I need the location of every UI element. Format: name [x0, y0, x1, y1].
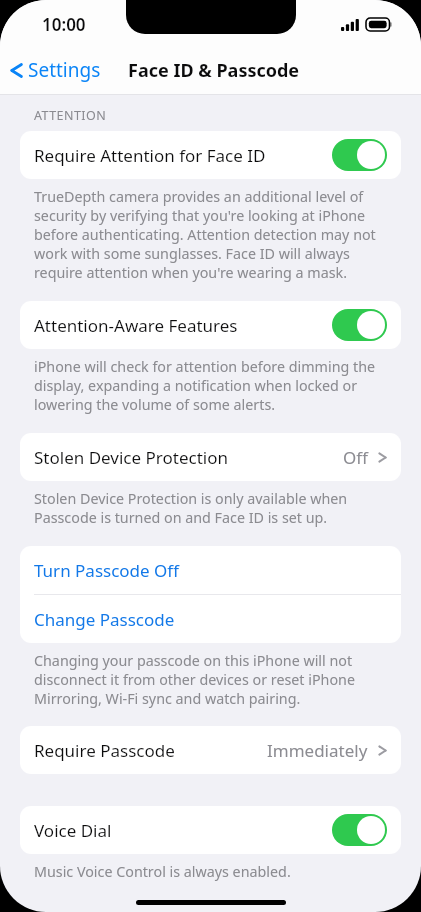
staticText: Stolen Device Protection is only availab…: [34, 489, 393, 527]
button[interactable]: Stolen Device Protection: [20, 433, 401, 481]
staticText: Change Passcode: [34, 608, 175, 631]
button[interactable]: Toggle, on: [332, 139, 387, 171]
button[interactable]: Voice Dial: [20, 806, 401, 854]
staticText: iPhone will check for attention before d…: [34, 357, 393, 414]
button[interactable]: Change Passcode: [20, 595, 401, 643]
button[interactable]: Toggle, on: [332, 309, 387, 341]
staticText: Music Voice Control is always enabled.: [34, 862, 291, 881]
staticText: Off: [343, 446, 368, 469]
staticText: Immediately: [267, 739, 368, 762]
staticText: Require Passcode: [34, 739, 267, 762]
staticText: Voice Dial: [34, 819, 332, 842]
button[interactable]: Require Passcode: [20, 726, 401, 774]
button[interactable]: Toggle, on: [332, 814, 387, 846]
staticText: ATTENTION: [34, 107, 107, 124]
staticText: Changing your passcode on this iPhone wi…: [34, 651, 393, 708]
button[interactable]: Back to Settings: [0, 51, 109, 89]
staticText: TrueDepth camera provides an additional …: [34, 187, 393, 282]
staticText: 10:00: [42, 13, 86, 36]
staticText: Stolen Device Protection: [34, 446, 343, 469]
staticText: Require Attention for Face ID: [34, 144, 332, 167]
staticText: Settings: [28, 57, 101, 83]
staticText: Turn Passcode Off: [34, 559, 180, 582]
staticText: Attention-Aware Features: [34, 314, 332, 337]
button[interactable]: Attention-Aware Features: [20, 301, 401, 349]
button[interactable]: Require Attention for Face ID: [20, 131, 401, 179]
other: Back to Settings: [10, 60, 23, 81]
button[interactable]: Turn Passcode Off: [20, 546, 401, 594]
staticText: Face ID & Passcode: [128, 58, 300, 83]
